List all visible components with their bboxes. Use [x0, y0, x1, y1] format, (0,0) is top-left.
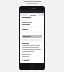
- button[interactable]: Home: [31, 65, 34, 68]
- button[interactable]: [22, 59, 30, 61]
- button[interactable]: [22, 35, 42, 38]
- button[interactable]: Address bar: [27, 14, 38, 16]
